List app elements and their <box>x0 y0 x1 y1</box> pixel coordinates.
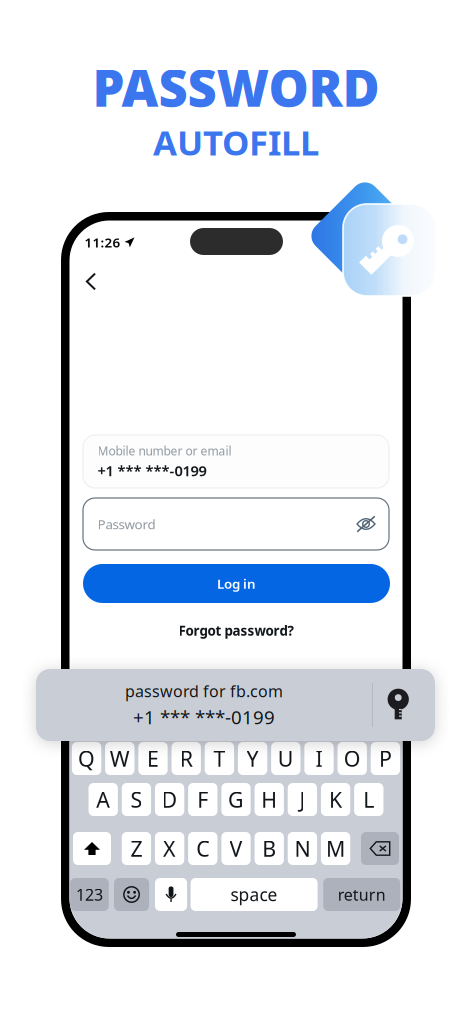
button[interactable]: Dictation <box>155 878 187 911</box>
staticText: O <box>344 744 361 773</box>
staticText: PASSWORD <box>92 53 379 121</box>
button[interactable]: V <box>221 832 251 865</box>
staticText: S <box>130 785 142 814</box>
staticText: password for fb.com <box>125 680 283 702</box>
staticText: Log in <box>217 575 256 592</box>
button[interactable]: S <box>122 783 151 816</box>
staticText: J <box>299 785 305 814</box>
staticText: space <box>231 883 278 906</box>
staticText: F <box>197 785 208 814</box>
button[interactable]: Y <box>238 742 267 775</box>
button[interactable]: Z <box>122 832 151 865</box>
button[interactable]: U <box>271 742 300 775</box>
button[interactable]: L <box>354 783 383 816</box>
button[interactable]: R <box>172 742 201 775</box>
staticText: R <box>180 744 193 773</box>
button[interactable]: M <box>321 832 350 865</box>
staticText: Y <box>247 744 259 773</box>
button[interactable]: Log in <box>83 564 390 603</box>
staticText: U <box>278 744 294 773</box>
staticText: Z <box>130 834 142 863</box>
staticText: 11:26 <box>84 233 120 251</box>
staticText: G <box>228 785 244 814</box>
button[interactable]: H <box>254 783 284 816</box>
button[interactable]: N <box>288 832 317 865</box>
staticText: Mobile number or email <box>97 443 231 459</box>
staticText: +1 *** ***-0199 <box>133 705 275 729</box>
staticText: 123 <box>76 884 103 905</box>
staticText: L <box>363 785 374 814</box>
staticText: Q <box>78 744 95 773</box>
button[interactable]: W <box>105 742 134 775</box>
button[interactable]: Delete <box>361 832 399 865</box>
button[interactable]: F <box>188 783 217 816</box>
staticText: N <box>294 834 310 863</box>
staticText: W <box>110 744 130 773</box>
button[interactable]: space <box>191 878 318 911</box>
staticText: C <box>196 834 209 863</box>
staticText: +1 *** ***-0199 <box>97 461 206 480</box>
button[interactable]: K <box>321 783 350 816</box>
staticText: Password <box>97 515 155 533</box>
staticText: D <box>162 785 178 814</box>
staticText: K <box>329 785 342 814</box>
button[interactable]: return <box>323 878 400 911</box>
staticText: P <box>379 744 392 773</box>
staticText: A <box>96 785 110 814</box>
button[interactable]: G <box>221 783 251 816</box>
button[interactable]: P <box>371 742 400 775</box>
button[interactable]: Emoji <box>114 878 149 911</box>
button[interactable]: Shift <box>73 832 111 865</box>
button[interactable]: B <box>255 832 284 865</box>
button[interactable]: O <box>337 742 367 775</box>
button[interactable]: Forgot password? <box>156 620 316 640</box>
staticText: Forgot password? <box>178 622 293 639</box>
button[interactable]: A <box>88 783 118 816</box>
button[interactable]: D <box>155 783 184 816</box>
staticText: E <box>147 744 159 773</box>
button[interactable]: Q <box>72 742 101 775</box>
button[interactable]: Back <box>78 268 104 294</box>
staticText: M <box>326 834 345 863</box>
staticText: T <box>213 744 225 773</box>
staticText: return <box>338 884 386 905</box>
staticText: X <box>163 834 176 863</box>
staticText: V <box>229 834 242 863</box>
button[interactable]: X <box>155 832 184 865</box>
staticText: H <box>261 785 277 814</box>
button[interactable]: Numbers <box>70 878 109 911</box>
button[interactable]: T <box>205 742 234 775</box>
staticText: I <box>315 744 322 773</box>
button[interactable]: E <box>138 742 168 775</box>
staticText: AUTOFILL <box>153 119 319 165</box>
staticText: B <box>262 834 276 863</box>
button[interactable]: J <box>288 783 317 816</box>
button[interactable]: I <box>304 742 334 775</box>
button[interactable]: C <box>188 832 217 865</box>
